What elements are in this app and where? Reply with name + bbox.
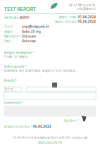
staticText: Unknown — [22, 35, 36, 38]
staticText: 01-04-2024 — [78, 15, 96, 19]
staticText: Results * — [4, 79, 16, 82]
staticText: f4a9-22c7-8e10 — [38, 141, 62, 144]
staticText: anp@thirsty.uab.nl — [22, 25, 49, 28]
staticText: Qualitative and quantitative analysis of… — [4, 69, 76, 72]
staticText: 05-04-2024 — [78, 20, 96, 23]
button[interactable]: Select... — [4, 87, 22, 91]
staticText: Gaba 20 mg — [22, 30, 41, 33]
staticText: Manufacturer — [4, 35, 21, 38]
staticText: Sample description * — [4, 51, 34, 54]
button[interactable]: Result value — [26, 87, 96, 91]
staticText: Analysis conducted * — [4, 125, 32, 128]
staticText: AU001 — [20, 16, 30, 19]
staticText: Task Number — [4, 16, 20, 19]
staticText: Signature * — [64, 119, 79, 122]
staticText: Lab of Molecular Sci. — [69, 3, 96, 7]
staticText: Unknown — [22, 39, 36, 43]
staticText: Sample — [4, 30, 13, 33]
staticText: Select... — [5, 87, 16, 91]
staticText: Client — [4, 25, 13, 28]
staticText: Comments * — [4, 101, 22, 104]
staticText: TEST REPORT — [4, 5, 36, 13]
staticText: Sample intake — [59, 15, 77, 19]
staticText: Tests required * — [4, 65, 26, 68]
staticText: Batch — [4, 39, 11, 43]
staticText: Verify this test at analysis-verify.nl w… — [13, 136, 87, 139]
staticText: 06-04-2024 — [33, 125, 51, 128]
staticText: info@labsci.nl — [77, 7, 96, 11]
staticText: Private lot sample — [4, 55, 28, 58]
staticText: Sample received — [55, 20, 77, 23]
